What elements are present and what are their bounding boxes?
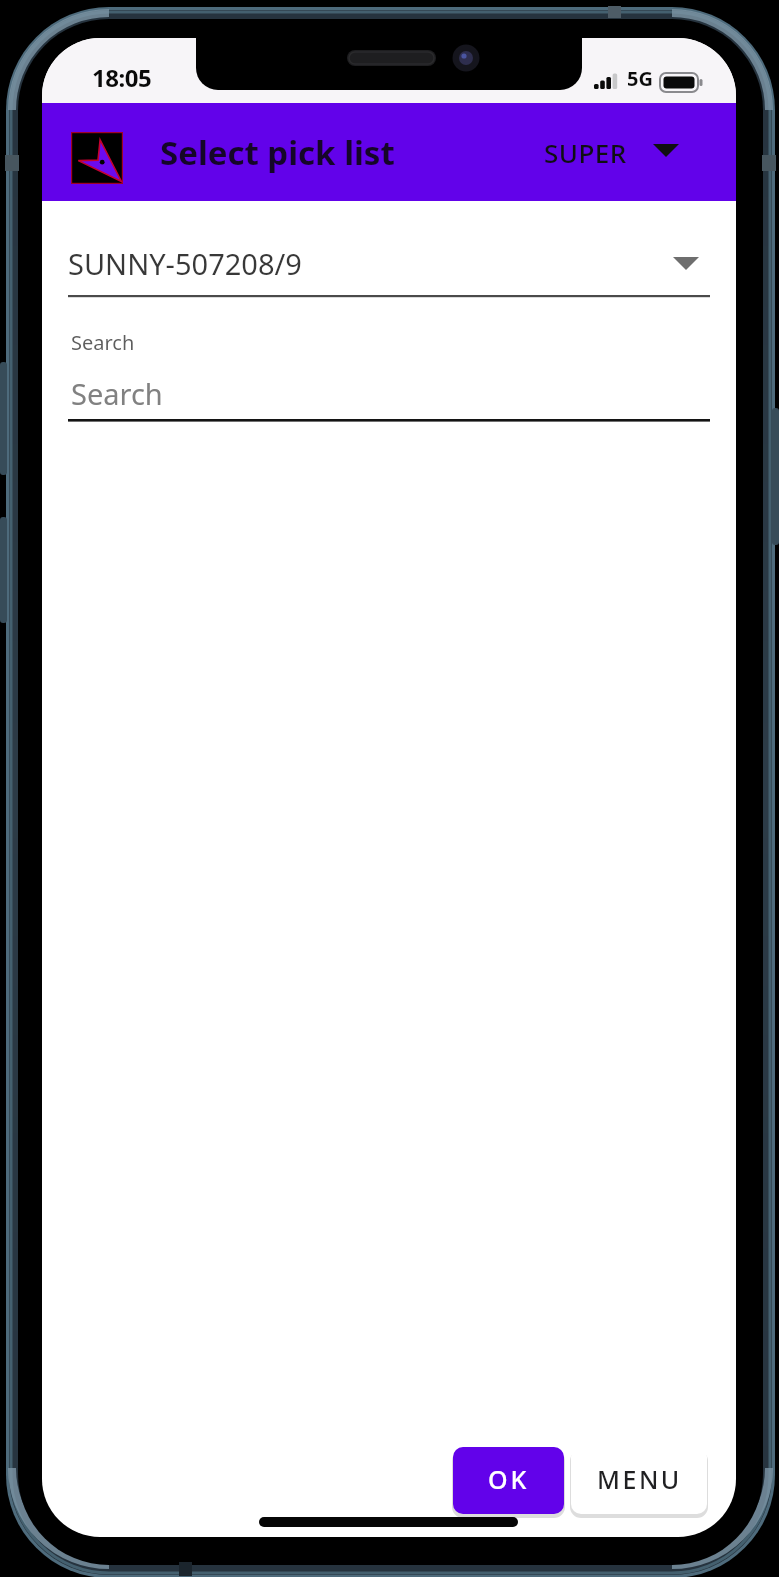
button[interactable]: MENU <box>571 1447 707 1514</box>
button[interactable] <box>71 132 123 184</box>
staticText: SUNNY-507208/9 <box>68 244 302 283</box>
staticText: Search <box>71 374 163 413</box>
staticText: MENU <box>597 1462 682 1496</box>
button[interactable]: SUPER <box>530 131 690 171</box>
staticText: 5G <box>627 65 653 92</box>
button[interactable]: OK <box>453 1447 564 1514</box>
staticText: Select pick list <box>160 130 395 175</box>
staticText: Search <box>71 329 135 356</box>
staticText: OK <box>488 1462 530 1496</box>
button[interactable]: SUNNY-507208/9 <box>68 238 710 298</box>
staticText: SUPER <box>544 135 627 167</box>
button[interactable]: Search <box>68 362 710 422</box>
staticText: 18:05 <box>92 61 152 94</box>
